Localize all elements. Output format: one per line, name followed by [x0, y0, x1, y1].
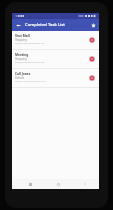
staticText: Call Jones — [15, 72, 31, 76]
staticText: Shopping — [15, 38, 27, 42]
button[interactable]: Visit Mall — [12, 31, 99, 49]
button[interactable]: Back — [81, 180, 89, 188]
button[interactable]: Delete all — [88, 19, 99, 31]
button[interactable]: Meeting — [12, 50, 99, 68]
button[interactable]: Call Jones — [12, 69, 99, 87]
staticText: Visit Mall — [15, 34, 30, 38]
button[interactable]: Back — [12, 19, 25, 31]
button[interactable]: Delete task — [86, 34, 98, 46]
staticText: Meeting — [15, 53, 29, 57]
button[interactable]: Delete task — [86, 53, 98, 65]
button[interactable]: Delete task — [86, 72, 98, 84]
button[interactable]: Recents — [26, 180, 34, 188]
staticText: Shopping — [15, 57, 27, 61]
staticText: Wed,21-Oct-2020,05:47 AM — [15, 79, 46, 82]
staticText: Tue,20-Oct-2020,06:47 AM — [15, 60, 45, 63]
staticText: Default — [15, 76, 24, 80]
staticText: Tue,29-Oct-2020,05:48 AM — [15, 41, 45, 44]
staticText: Completed Task List — [25, 22, 65, 28]
button[interactable]: Home — [54, 180, 62, 188]
